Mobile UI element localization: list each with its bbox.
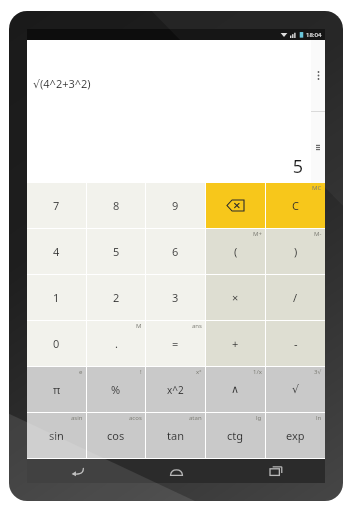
staticText: 7	[53, 198, 60, 213]
staticText: √	[292, 383, 300, 396]
staticText: 8	[113, 198, 120, 213]
staticText: M	[136, 322, 142, 330]
button[interactable]: 6	[146, 229, 205, 274]
button[interactable]: asin	[27, 413, 86, 458]
staticText: 0	[53, 336, 60, 351]
staticText: ln	[316, 414, 322, 422]
button[interactable]: 8	[87, 183, 145, 228]
button[interactable]: ans	[146, 321, 205, 366]
staticText: e	[79, 368, 83, 376]
button[interactable]: 5	[87, 229, 145, 274]
button[interactable]: acos	[87, 413, 145, 458]
staticText: 3	[172, 290, 179, 305]
staticText: atan	[189, 414, 202, 422]
staticText: ∧	[231, 383, 240, 396]
button[interactable]: MC	[266, 183, 325, 228]
button[interactable]: +	[206, 321, 265, 366]
staticText: acos	[129, 414, 142, 422]
button[interactable]: lg	[206, 413, 265, 458]
staticText: )	[294, 244, 298, 259]
staticText: lg	[256, 414, 262, 422]
staticText: ans	[192, 322, 202, 330]
button[interactable]: Back	[27, 459, 127, 483]
button[interactable]: 3	[146, 275, 205, 320]
button[interactable]: 1/x	[206, 367, 265, 412]
button[interactable]: 0	[27, 321, 86, 366]
staticText: asin	[71, 414, 83, 422]
staticText: exp	[286, 428, 305, 443]
staticText: /	[293, 290, 298, 305]
button[interactable]: Recent apps	[226, 459, 325, 483]
button[interactable]: e	[27, 367, 86, 412]
button[interactable]: 2	[87, 275, 145, 320]
staticText: 3√	[314, 368, 322, 376]
button[interactable]: Backspace	[206, 183, 265, 228]
staticText: xˣ	[196, 368, 202, 376]
staticText: 1/x	[253, 368, 262, 376]
staticText: tan	[167, 428, 184, 443]
staticText: .	[115, 336, 118, 351]
button[interactable]: atan	[146, 413, 205, 458]
staticText: 18:04	[306, 31, 322, 39]
button[interactable]: 3√	[266, 367, 325, 412]
button[interactable]: M	[87, 321, 145, 366]
button[interactable]: Angle unit	[311, 112, 325, 183]
button[interactable]: 4	[27, 229, 86, 274]
staticText: 5	[113, 244, 120, 259]
button[interactable]: Home	[127, 459, 226, 483]
button[interactable]: xˣ	[146, 367, 205, 412]
staticText: √(4^2+3^2)	[33, 76, 91, 91]
staticText: 2	[113, 290, 120, 305]
button[interactable]: /	[266, 275, 325, 320]
button[interactable]: 7	[27, 183, 86, 228]
staticText: 4	[53, 244, 60, 259]
staticText: =	[172, 336, 179, 351]
staticText: π	[53, 382, 61, 397]
staticText: C	[292, 198, 299, 213]
staticText: cos	[107, 428, 125, 443]
staticText: +	[232, 336, 239, 351]
staticText: %	[111, 382, 121, 397]
staticText: 5	[27, 154, 303, 179]
button[interactable]: -	[266, 321, 325, 366]
staticText: ×	[232, 290, 239, 305]
staticText: sin	[49, 428, 64, 443]
button[interactable]: More options	[311, 40, 325, 111]
staticText: M+	[253, 230, 262, 238]
button[interactable]: ln	[266, 413, 325, 458]
button[interactable]: !	[87, 367, 145, 412]
staticText: !	[140, 368, 142, 376]
button[interactable]: 9	[146, 183, 205, 228]
staticText: -	[294, 336, 298, 351]
staticText: 9	[172, 198, 179, 213]
staticText: x^2	[167, 383, 184, 397]
staticText: 6	[172, 244, 179, 259]
button[interactable]: ×	[206, 275, 265, 320]
button[interactable]: 1	[27, 275, 86, 320]
staticText: M-	[314, 230, 322, 238]
staticText: ctg	[227, 428, 244, 443]
button[interactable]: M+	[206, 229, 265, 274]
staticText: MC	[312, 184, 322, 192]
button[interactable]: M-	[266, 229, 325, 274]
staticText: (	[234, 244, 238, 259]
staticText: 1	[53, 290, 60, 305]
